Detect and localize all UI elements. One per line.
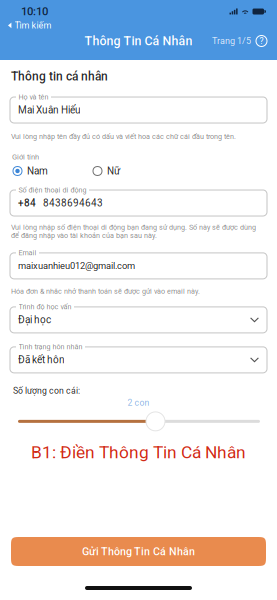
staticText: 2 con [127, 398, 149, 408]
staticText: Trang 1/5 [212, 36, 251, 46]
staticText: maixuanhieu012@gmail.com [18, 260, 135, 271]
staticText: Giới tính [12, 153, 39, 161]
staticText: Gửi Thông Tin Cá Nhân [82, 545, 195, 558]
staticText: Đã kết hôn [18, 354, 65, 366]
staticText: 10:10 [21, 5, 48, 18]
button[interactable]: Nữ [93, 165, 120, 177]
staticText: Mai Xuân Hiếu [18, 104, 81, 116]
button[interactable]: Đại học [10, 307, 267, 333]
staticText: Trình độ học vấn [18, 303, 71, 311]
staticText: Tình trạng hôn nhân [18, 343, 82, 351]
button[interactable]: Gửi Thông Tin Cá Nhân [11, 537, 266, 566]
staticText: Tìm kiếm [15, 20, 52, 31]
staticText: Nữ [107, 165, 120, 177]
staticText: 8438694643 [43, 197, 103, 209]
staticText: Email [18, 249, 36, 257]
button[interactable]: Đã kết hôn [10, 347, 267, 373]
staticText: Thông tin cá nhân [11, 69, 108, 84]
staticText: Họ và tên [18, 93, 48, 101]
staticText: Số điện thoại di động [18, 186, 86, 194]
staticText: Nam [27, 165, 48, 177]
staticText: Thông Tin Cá Nhân [84, 34, 192, 48]
staticText: Vui lòng nhập tên đầy đủ có dấu và viết … [11, 132, 236, 141]
button[interactable]: Nam [13, 165, 48, 177]
staticText: +84 [18, 197, 36, 209]
staticText: Số lượng con cái: [13, 386, 80, 396]
staticText: Hóa đơn & nhắc nhở thanh toán sẽ được gử… [11, 287, 200, 296]
button[interactable]: Tìm kiếm [0, 19, 58, 32]
staticText: Đại học [18, 314, 51, 326]
staticText: B1: Điền Thông Tin Cá Nhân [31, 442, 246, 462]
staticText: Vui lòng nhập số điện thoại di động bạn … [11, 223, 256, 240]
staticText: ? [259, 36, 263, 46]
button[interactable]: Help [255, 34, 268, 47]
